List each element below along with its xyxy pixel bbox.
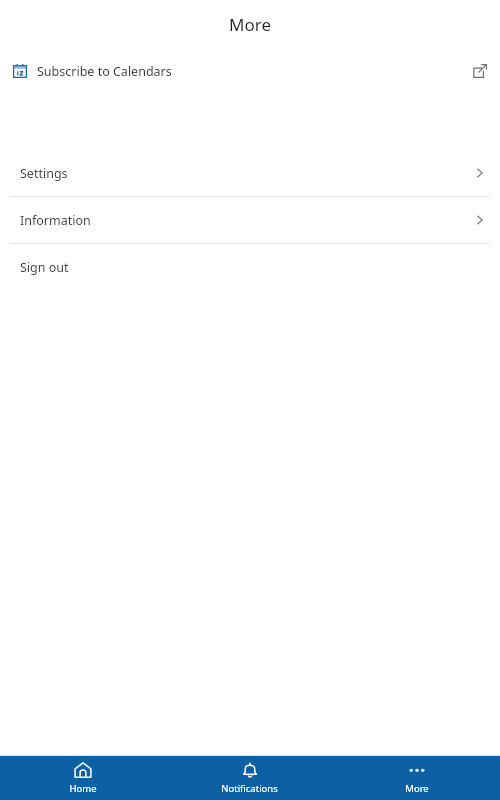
button[interactable]: Information bbox=[0, 197, 500, 243]
staticText: Sign out bbox=[20, 259, 69, 276]
other: Home bbox=[74, 761, 92, 779]
other: Notifications bbox=[241, 761, 259, 779]
button[interactable]: Sign out bbox=[0, 244, 500, 290]
other: Calendar bbox=[13, 64, 27, 78]
staticText: More bbox=[229, 13, 271, 36]
button[interactable]: Settings bbox=[0, 150, 500, 196]
other: More bbox=[408, 761, 426, 779]
other: Open bbox=[472, 165, 488, 181]
staticText: Notifications bbox=[221, 782, 278, 795]
button[interactable]: Calendar bbox=[0, 48, 500, 94]
staticText: More bbox=[405, 782, 429, 795]
other: Open external link bbox=[473, 64, 487, 78]
staticText: Subscribe to Calendars bbox=[37, 63, 172, 80]
staticText: Settings bbox=[20, 165, 68, 182]
other: Open bbox=[472, 212, 488, 228]
button[interactable]: More bbox=[333, 756, 500, 800]
staticText: Information bbox=[20, 212, 91, 229]
button[interactable]: Home bbox=[0, 756, 166, 800]
button[interactable]: Notifications bbox=[166, 756, 333, 800]
staticText: Home bbox=[69, 782, 97, 795]
